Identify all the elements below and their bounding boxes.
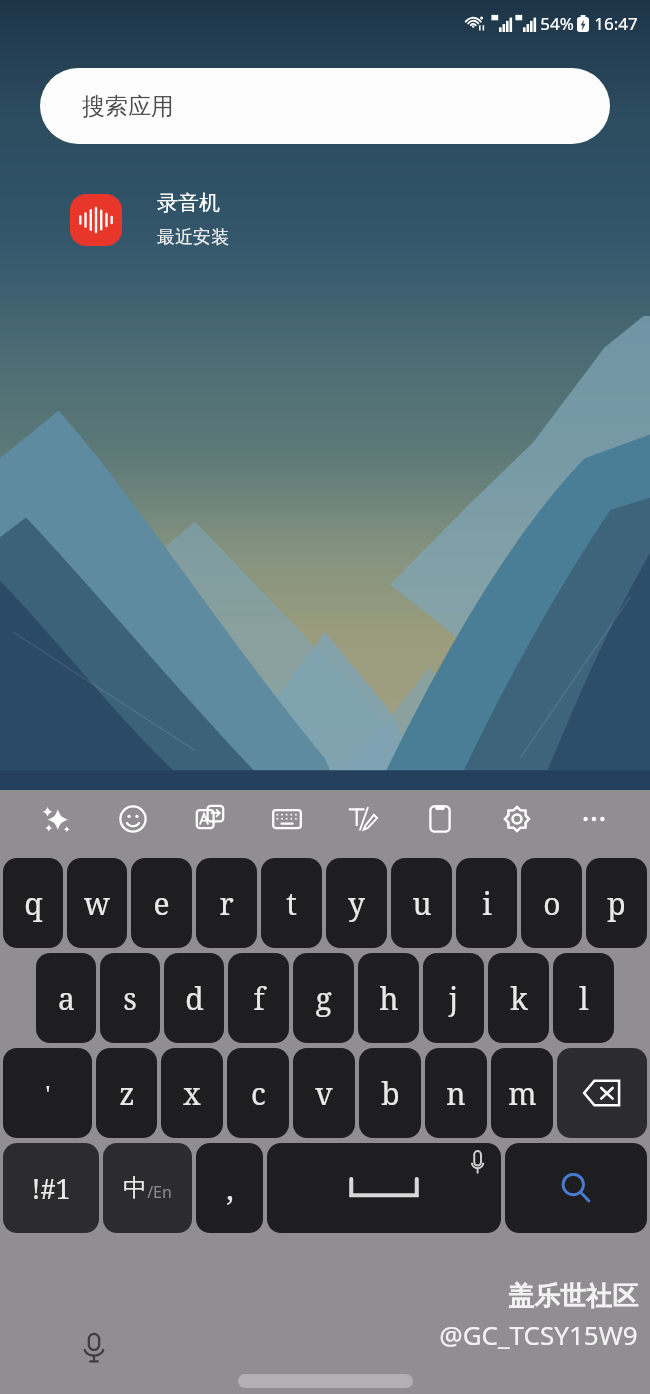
staticText: !#1 — [31, 1170, 71, 1207]
button[interactable]: a — [36, 953, 96, 1043]
button[interactable]: j — [423, 953, 484, 1043]
button[interactable]: r — [196, 858, 257, 948]
button[interactable]: f — [228, 953, 289, 1043]
staticText: w — [84, 883, 110, 924]
button[interactable]: u — [391, 858, 452, 948]
staticText: b — [381, 1073, 400, 1114]
button[interactable]: Space — [267, 1143, 501, 1233]
button[interactable]: 搜索应用 — [40, 68, 610, 144]
button[interactable]: h — [358, 953, 419, 1043]
button[interactable]: !#1 — [3, 1143, 99, 1233]
staticText: 最近安装 — [157, 226, 229, 249]
button[interactable]: Translate — [183, 792, 237, 846]
button[interactable]: l — [553, 953, 614, 1043]
button[interactable]: Clipboard — [413, 792, 467, 846]
button[interactable]: Handwriting — [336, 792, 390, 846]
staticText: e — [153, 883, 170, 924]
button[interactable]: m — [491, 1048, 553, 1138]
staticText: z — [119, 1073, 135, 1114]
button[interactable]: w — [67, 858, 127, 948]
button[interactable]: e — [131, 858, 192, 948]
staticText: y — [348, 883, 365, 924]
staticText: u — [412, 883, 432, 924]
button[interactable]: s — [100, 953, 160, 1043]
button[interactable]: b — [359, 1048, 421, 1138]
staticText: ' — [45, 1077, 51, 1110]
button[interactable]: Search — [505, 1143, 647, 1233]
staticText: r — [219, 883, 234, 924]
staticText: q — [24, 883, 43, 924]
staticText: j — [449, 978, 458, 1019]
staticText: n — [446, 1073, 466, 1114]
button[interactable]: x — [161, 1048, 223, 1138]
button[interactable]: n — [425, 1048, 487, 1138]
button[interactable]: t — [261, 858, 322, 948]
staticText: l — [579, 978, 589, 1019]
button[interactable]: Voice input — [72, 1326, 116, 1370]
staticText: d — [185, 978, 204, 1019]
button[interactable]: Emoji — [106, 792, 160, 846]
button[interactable]: 录音机 — [70, 190, 229, 249]
button[interactable]: v — [293, 1048, 355, 1138]
button[interactable]: Settings — [490, 792, 544, 846]
staticText: 搜索应用 — [82, 92, 174, 121]
button[interactable]: More — [567, 792, 621, 846]
staticText: 54% — [540, 12, 574, 35]
staticText: c — [251, 1073, 266, 1114]
staticText: t — [286, 883, 297, 924]
button[interactable]: z — [96, 1048, 157, 1138]
button[interactable]: g — [293, 953, 354, 1043]
button[interactable]: y — [326, 858, 387, 948]
staticText: f — [253, 978, 265, 1019]
button[interactable]: Keyboard layout — [260, 792, 314, 846]
staticText: g — [315, 978, 332, 1019]
staticText: 录音机 — [157, 190, 220, 216]
button[interactable]: k — [488, 953, 549, 1043]
staticText: , — [226, 1168, 234, 1209]
staticText: s — [123, 978, 137, 1019]
staticText: i — [482, 883, 492, 924]
staticText: 盖乐世社区 — [508, 1280, 638, 1313]
button[interactable]: i — [456, 858, 517, 948]
staticText: a — [58, 978, 75, 1019]
staticText: 16:47 — [594, 12, 638, 35]
button[interactable]: ' — [3, 1048, 92, 1138]
staticText: @GC_TCSY15W9 — [439, 1317, 638, 1352]
other: 录音机 — [70, 194, 122, 246]
button[interactable]: o — [521, 858, 582, 948]
staticText: m — [508, 1073, 537, 1114]
staticText: o — [543, 883, 561, 924]
button[interactable]: Backspace — [557, 1048, 647, 1138]
button[interactable]: c — [227, 1048, 289, 1138]
staticText: h — [379, 978, 399, 1019]
button[interactable]: q — [3, 858, 63, 948]
button[interactable]: d — [164, 953, 224, 1043]
button[interactable]: AI assist — [29, 792, 83, 846]
staticText: k — [510, 978, 528, 1019]
staticText: 中 — [123, 1173, 147, 1203]
staticText: v — [315, 1073, 333, 1114]
staticText: p — [607, 883, 626, 924]
button[interactable]: p — [586, 858, 647, 948]
button[interactable]: 中 — [103, 1143, 192, 1233]
button[interactable]: , — [196, 1143, 263, 1233]
staticText: /En — [147, 1181, 172, 1203]
staticText: x — [183, 1073, 201, 1114]
